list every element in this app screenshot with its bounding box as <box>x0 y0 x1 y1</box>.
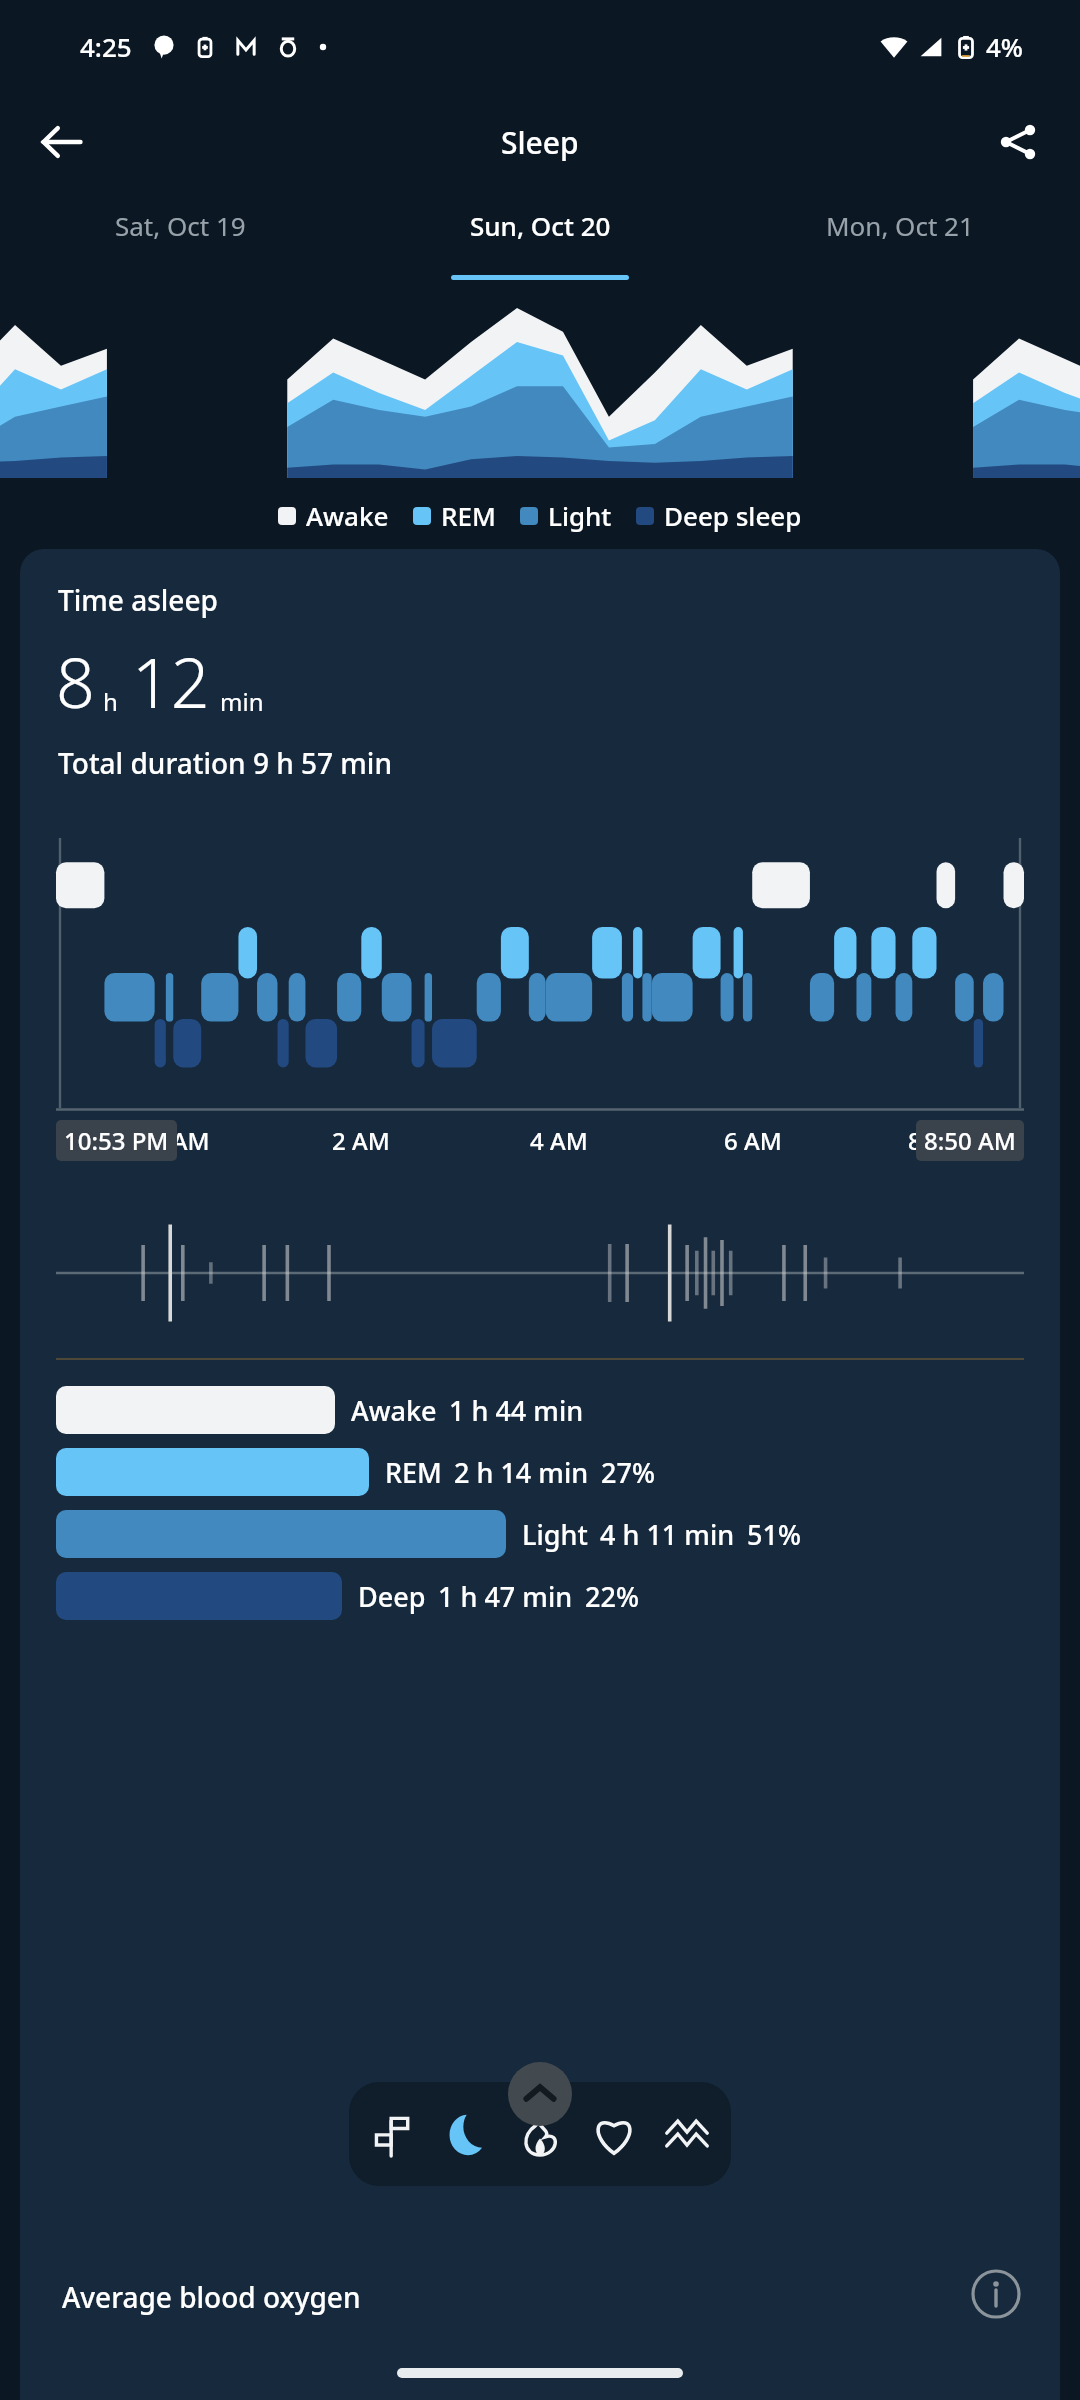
button[interactable]: Back <box>24 104 100 180</box>
button[interactable]: Sat, Oct 19 <box>0 192 360 284</box>
button[interactable]: Share <box>980 104 1056 180</box>
staticText: Deep sleep <box>664 498 802 533</box>
button[interactable]: Expand <box>508 2062 572 2126</box>
staticText: Awake <box>306 498 389 533</box>
staticText: 22% <box>585 1578 639 1615</box>
button[interactable]: Deep <box>56 1572 1024 1620</box>
staticText: 2 h 14 min <box>454 1454 589 1491</box>
staticText: 51% <box>747 1516 801 1553</box>
staticText: 27% <box>601 1454 655 1491</box>
staticText: 2 AM <box>332 1124 390 1157</box>
staticText: Average blood oxygen <box>62 2278 361 2316</box>
staticText: Awake <box>351 1392 437 1429</box>
staticText: 4:25 <box>80 29 132 64</box>
button[interactable]: Info <box>968 2266 1024 2322</box>
button[interactable]: Heart rate <box>582 2102 646 2166</box>
staticText: 4 h 11 min <box>600 1516 735 1553</box>
staticText: Sun, Oct 20 <box>470 208 611 243</box>
staticText: 6 AM <box>724 1124 782 1157</box>
staticText: Light <box>548 498 612 533</box>
staticText: 8 AM <box>908 1124 966 1157</box>
button[interactable]: Light <box>56 1510 1024 1558</box>
button[interactable]: Trends <box>655 2102 719 2166</box>
button[interactable]: REM <box>56 1448 1024 1496</box>
staticText: Sleep <box>501 122 579 163</box>
button[interactable]: Today <box>361 2102 425 2166</box>
staticText: REM <box>441 498 496 533</box>
staticText: Time asleep <box>58 581 218 619</box>
button[interactable]: Mon, Oct 21 <box>720 192 1080 284</box>
staticText: Mon, Oct 21 <box>826 208 974 243</box>
staticText: min <box>220 685 264 718</box>
staticText: Light <box>522 1516 588 1553</box>
staticText: 12 <box>132 635 210 728</box>
button[interactable]: Sleep <box>435 2102 499 2166</box>
staticText: 8 <box>56 635 95 728</box>
staticText: 4 AM <box>530 1124 588 1157</box>
staticText: 1 h 44 min <box>449 1392 584 1429</box>
staticText: 4% <box>986 29 1024 64</box>
staticText: h <box>103 685 118 718</box>
staticText: 10:53 PM <box>64 1124 169 1157</box>
staticText: 8:50 AM <box>924 1124 1016 1157</box>
button[interactable]: Awake <box>56 1386 1024 1434</box>
staticText: Deep <box>358 1578 426 1615</box>
staticText: Total duration 9 h 57 min <box>58 744 392 782</box>
button[interactable]: Sun, Oct 20 <box>360 192 720 284</box>
button[interactable]: Activity <box>508 2102 572 2166</box>
staticText: 1 h 47 min <box>438 1578 573 1615</box>
staticText: 12 AM <box>138 1124 210 1157</box>
staticText: REM <box>385 1454 442 1491</box>
staticText: Sat, Oct 19 <box>115 208 246 243</box>
button[interactable]: Average blood oxygen <box>20 2222 1060 2400</box>
